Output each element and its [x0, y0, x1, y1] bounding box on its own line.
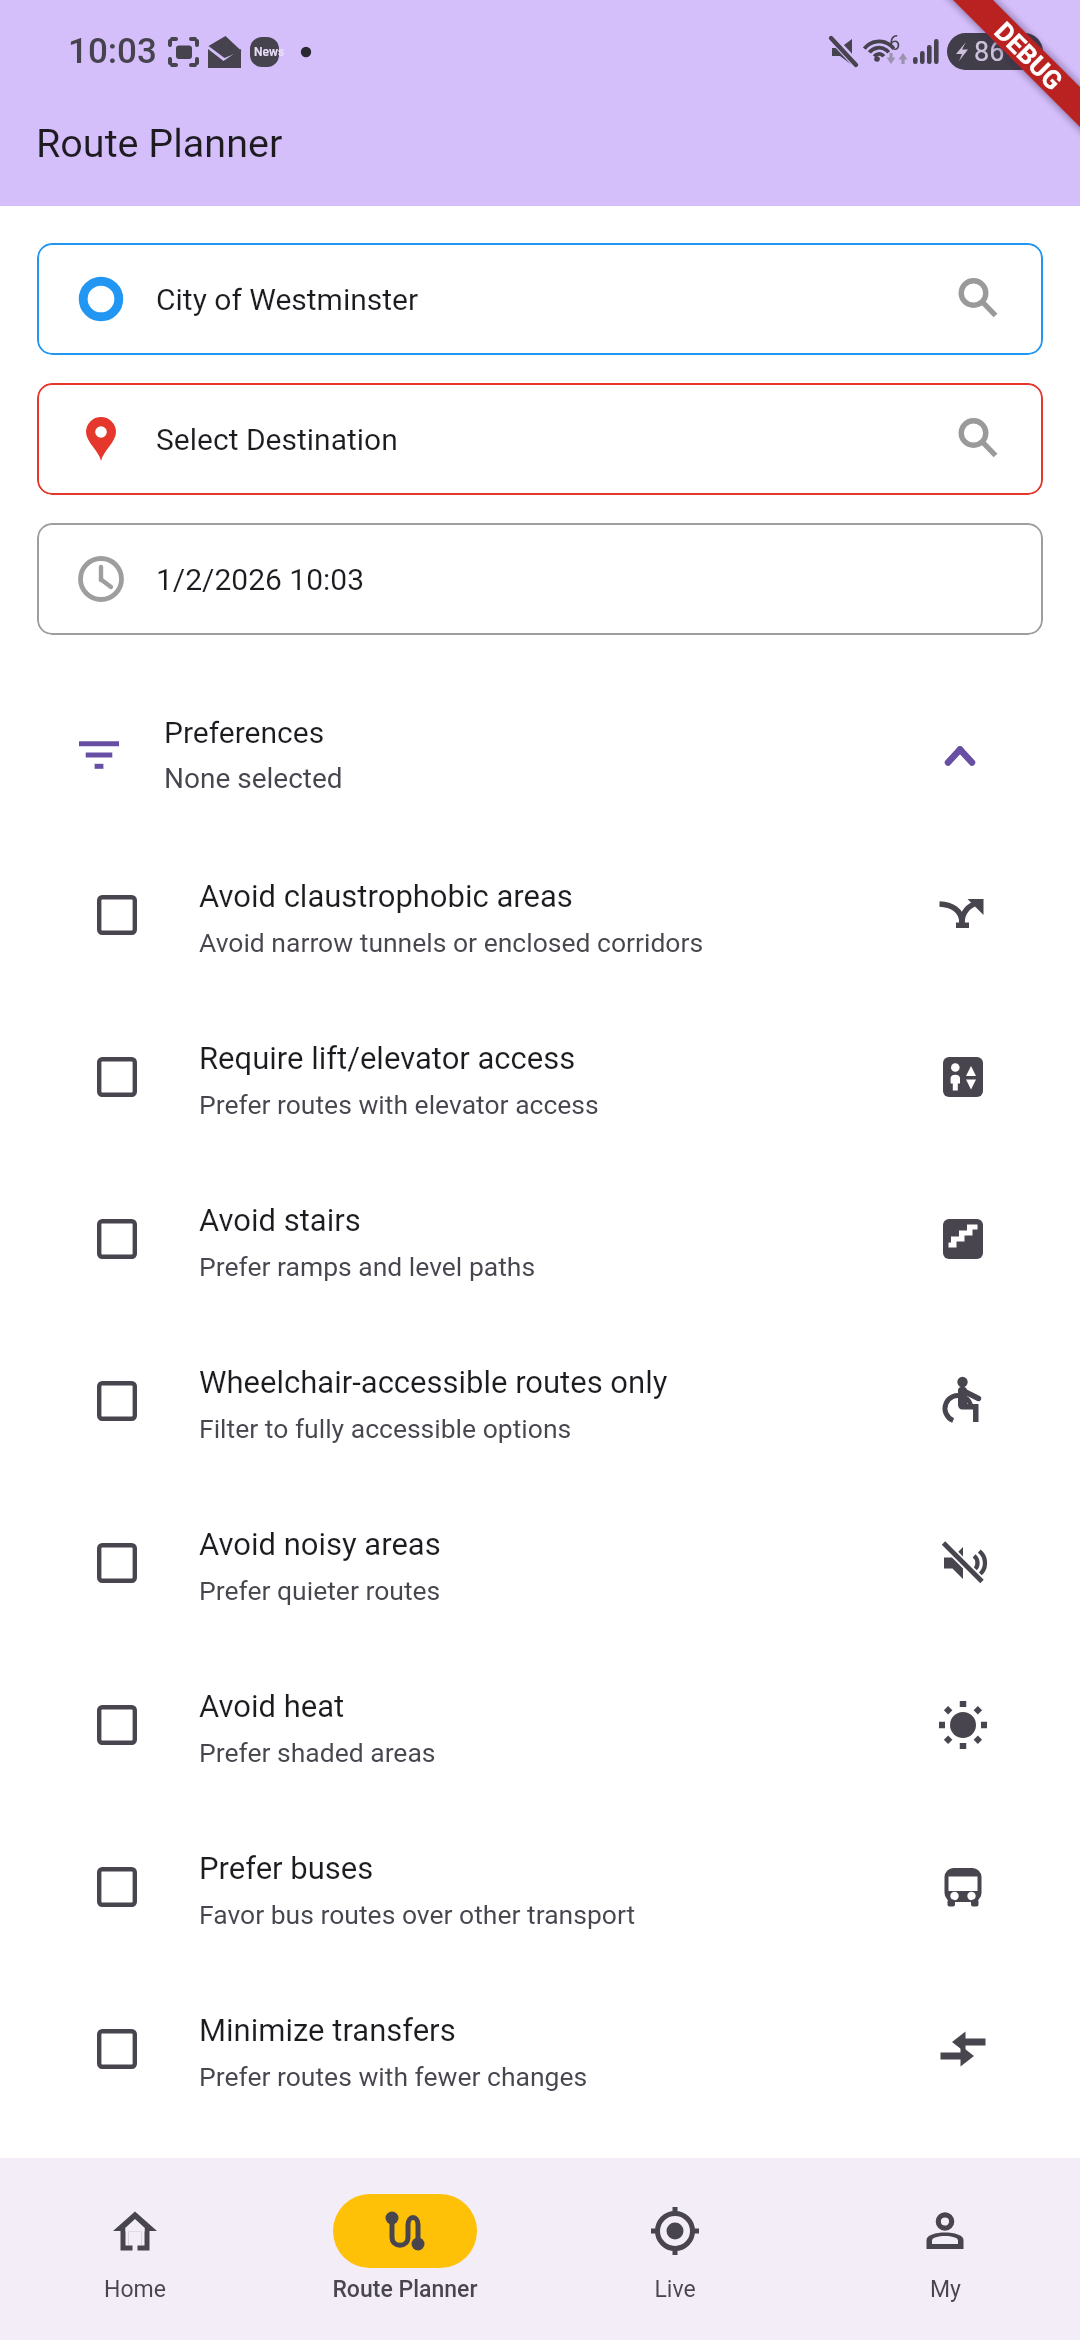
other: Collapse: [936, 731, 984, 779]
staticText: Prefer buses: [199, 1850, 374, 1886]
staticText: Select Destination: [156, 422, 398, 457]
button[interactable]: Avoid heat: [0, 1644, 1080, 1806]
staticText: Require lift/elevator access: [199, 1040, 576, 1076]
button[interactable]: My: [810, 2158, 1080, 2340]
button[interactable]: Route Planner: [270, 2158, 540, 2340]
button[interactable]: Avoid noisy areas: [0, 1482, 1080, 1644]
staticText: 10:03: [68, 31, 157, 72]
staticText: Route Planner: [332, 2276, 478, 2303]
button[interactable]: Preferences: [0, 704, 1080, 806]
button[interactable]: City of Westminster: [37, 243, 1043, 355]
staticText: Avoid claustrophobic areas: [199, 878, 573, 914]
staticText: Minimize transfers: [199, 2012, 456, 2048]
staticText: Avoid narrow tunnels or enclosed corrido…: [199, 927, 704, 958]
staticText: My: [930, 2276, 961, 2303]
button[interactable]: Require lift/elevator access: [0, 996, 1080, 1158]
staticText: 1/2/2026 10:03: [156, 562, 365, 597]
button[interactable]: 1/2/2026 10:03: [37, 523, 1043, 635]
button[interactable]: Select Destination: [37, 383, 1043, 495]
staticText: DEBUG: [988, 16, 1068, 96]
staticText: News: [254, 45, 285, 59]
other: Search: [950, 416, 996, 462]
staticText: 86: [974, 36, 1005, 68]
staticText: Preferences: [164, 715, 325, 750]
button[interactable]: Live: [540, 2158, 810, 2340]
staticText: Prefer routes with fewer changes: [199, 2061, 588, 2092]
staticText: Wheelchair-accessible routes only: [199, 1364, 668, 1400]
other: Search: [950, 276, 996, 322]
staticText: Live: [654, 2276, 696, 2303]
staticText: City of Westminster: [156, 282, 419, 317]
button[interactable]: Avoid claustrophobic areas: [0, 834, 1080, 996]
staticText: Avoid noisy areas: [199, 1526, 441, 1562]
staticText: 6: [889, 31, 901, 54]
staticText: Prefer routes with elevator access: [199, 1089, 599, 1120]
staticText: Prefer shaded areas: [199, 1737, 436, 1768]
staticText: Route Planner: [36, 120, 283, 166]
button[interactable]: Avoid stairs: [0, 1158, 1080, 1320]
staticText: Home: [104, 2276, 166, 2303]
staticText: Prefer quieter routes: [199, 1575, 441, 1606]
button[interactable]: Home: [0, 2158, 270, 2340]
button[interactable]: Prefer buses: [0, 1806, 1080, 1968]
button[interactable]: Wheelchair-accessible routes only: [0, 1320, 1080, 1482]
staticText: Prefer ramps and level paths: [199, 1251, 536, 1282]
staticText: Avoid heat: [199, 1688, 345, 1724]
staticText: Filter to fully accessible options: [199, 1413, 572, 1444]
staticText: None selected: [164, 762, 343, 795]
staticText: Favor bus routes over other transport: [199, 1899, 636, 1930]
staticText: Avoid stairs: [199, 1202, 361, 1238]
button[interactable]: Minimize transfers: [0, 1968, 1080, 2130]
